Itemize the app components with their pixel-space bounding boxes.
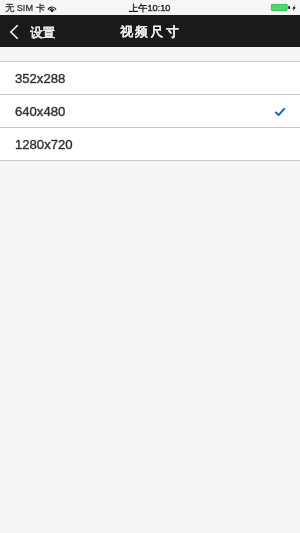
button[interactable]: 设置 xyxy=(0,21,63,42)
staticText: 640x480 xyxy=(15,104,66,119)
staticText: 设置 xyxy=(30,25,55,40)
staticText: 上午10:10 xyxy=(129,2,171,14)
button[interactable]: 640x480 xyxy=(0,95,300,127)
staticText: 上午10:10 xyxy=(129,2,171,14)
staticText: 设置 xyxy=(30,25,55,40)
staticText: 1280x720 xyxy=(15,137,73,152)
staticText: 视频尺寸 xyxy=(120,24,182,40)
staticText: 无 SIM 卡 xyxy=(5,2,45,14)
staticText: 352x288 xyxy=(15,71,66,86)
staticText: 无 SIM 卡 xyxy=(5,2,45,14)
other: Selected xyxy=(275,108,285,116)
staticText: 640x480 xyxy=(15,104,66,119)
button[interactable]: 1280x720 xyxy=(0,128,300,160)
button[interactable]: 352x288 xyxy=(0,62,300,94)
staticText: 1280x720 xyxy=(15,137,73,152)
staticText: 视频尺寸 xyxy=(120,24,182,40)
staticText: 352x288 xyxy=(15,71,66,86)
